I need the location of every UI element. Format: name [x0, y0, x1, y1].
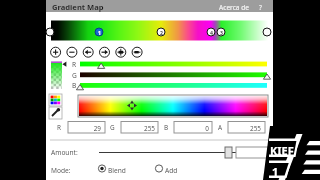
staticText: 29 — [93, 124, 101, 133]
button[interactable]: Move left — [82, 46, 94, 58]
button[interactable]: Stop 3 — [217, 28, 225, 36]
staticText: 255 — [144, 124, 155, 133]
button[interactable]: About — [216, 0, 256, 12]
staticText: Mode: — [51, 166, 71, 175]
staticText: A — [218, 123, 223, 132]
button[interactable]: Eyedropper — [49, 107, 62, 119]
staticText: Gradient Map — [52, 2, 104, 12]
staticText: Blend — [108, 166, 126, 175]
staticText: Amount: — [51, 148, 78, 157]
staticText: 1 — [272, 164, 279, 179]
staticText: B — [72, 81, 77, 90]
button[interactable]: Remove stop — [66, 46, 78, 58]
button[interactable]: Alpha value — [228, 121, 265, 133]
button[interactable]: Add mode — [156, 162, 192, 174]
button[interactable]: Help — [256, 0, 270, 12]
staticText: Add — [165, 166, 178, 175]
button[interactable]: Green value — [121, 121, 158, 133]
staticText: R — [57, 123, 61, 132]
staticText: 1 — [98, 29, 101, 36]
staticText: R — [72, 60, 77, 69]
staticText: 255 — [250, 124, 261, 133]
staticText: 0 — [205, 124, 209, 133]
staticText: G — [72, 71, 77, 80]
button[interactable]: Colour field — [79, 96, 267, 117]
button[interactable]: Add stop — [50, 46, 62, 58]
button[interactable]: Red value — [68, 121, 105, 133]
staticText: 3 — [220, 29, 223, 36]
button[interactable]: Alpha slider — [51, 63, 62, 89]
staticText: B — [164, 123, 169, 132]
staticText: 4 — [210, 29, 213, 36]
button[interactable]: Palette — [49, 94, 62, 106]
button[interactable]: Align — [131, 46, 143, 58]
button[interactable]: Move right — [98, 46, 110, 58]
staticText: KIEF — [270, 143, 294, 158]
button[interactable]: Distribute — [115, 46, 127, 58]
button[interactable]: Stop 4 — [207, 28, 215, 36]
button[interactable]: Stop 1 — [95, 28, 103, 36]
staticText: ? — [259, 3, 262, 12]
button[interactable]: Stop 2 — [157, 28, 165, 36]
button[interactable]: Amount slider — [99, 146, 249, 158]
staticText: Acerca de — [219, 3, 250, 12]
staticText: G — [110, 123, 115, 132]
button[interactable]: Gradient — [47, 19, 273, 41]
button[interactable]: Blend mode — [99, 162, 139, 174]
staticText: 2 — [160, 29, 163, 36]
button[interactable]: Blue value — [174, 121, 211, 133]
